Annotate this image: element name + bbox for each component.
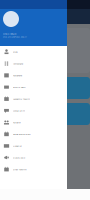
button[interactable]: Kimlik Kartı xyxy=(0,81,67,93)
button[interactable]: Haberler xyxy=(0,140,67,152)
staticText: Kulüp Etkinlikleri xyxy=(13,133,31,136)
button[interactable]: Mesajlarım xyxy=(0,105,67,117)
staticText: Sınav Takvimi xyxy=(13,168,27,171)
staticText: ORUÇ ARSLAN xyxy=(3,32,17,35)
staticText: Duyuru Ekle xyxy=(13,156,25,159)
staticText: Akademik Takvim xyxy=(13,97,30,100)
staticText: Kulüpler xyxy=(13,121,21,124)
staticText: Kimlik Kartı xyxy=(13,86,26,89)
button[interactable]: Kulüpler xyxy=(0,116,67,128)
staticText: Kütüphane xyxy=(13,74,22,77)
staticText: Mesajlarım xyxy=(13,109,25,112)
button[interactable]: Akademik Takvim xyxy=(0,93,67,105)
button[interactable]: Kütüphane xyxy=(0,69,67,81)
button[interactable]: Duyuru Ekle xyxy=(0,152,67,164)
button[interactable]: Profil xyxy=(0,46,67,58)
button[interactable]: Yemekhane xyxy=(0,58,67,70)
staticText: Profil xyxy=(13,50,18,53)
button[interactable]: Sınav Takvimi xyxy=(0,163,67,175)
button[interactable]: Kulüp Etkinlikleri xyxy=(0,128,67,140)
staticText: Haberler xyxy=(13,144,22,147)
staticText: oruc.arslan@okul.edu.tr xyxy=(3,35,27,38)
staticText: Yemekhane xyxy=(13,62,23,65)
